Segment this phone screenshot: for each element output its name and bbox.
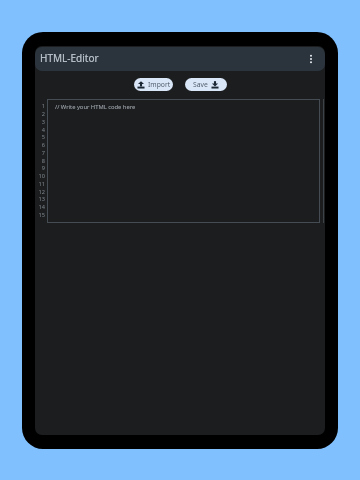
staticText: 12: [38, 188, 45, 195]
staticText: 2: [41, 110, 45, 117]
staticText: 6: [41, 141, 45, 148]
staticText: 10: [38, 172, 45, 179]
button[interactable]: HTML-Editor: [35, 47, 325, 71]
staticText: 9: [41, 164, 45, 171]
staticText: HTML-Editor: [40, 51, 99, 65]
staticText: 5: [41, 133, 45, 140]
staticText: 1: [41, 102, 45, 109]
staticText: 14: [38, 203, 45, 210]
staticText: 3: [41, 118, 45, 125]
staticText: 15: [38, 211, 45, 218]
staticText: 13: [38, 195, 45, 202]
staticText: 7: [41, 149, 45, 156]
button[interactable]: Save: [185, 78, 227, 91]
staticText: 8: [41, 157, 45, 164]
staticText: Save: [193, 80, 208, 89]
staticText: 4: [41, 126, 45, 133]
button[interactable]: More options: [304, 52, 318, 66]
staticText: 11: [38, 180, 45, 187]
button[interactable]: // Write your HTML code here: [47, 99, 320, 223]
staticText: Import: [148, 80, 171, 89]
button[interactable]: Import: [134, 78, 173, 91]
staticText: // Write your HTML code here: [55, 103, 136, 111]
